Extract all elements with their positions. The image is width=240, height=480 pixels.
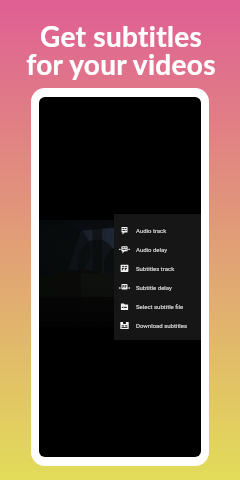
staticText: Get subtitles for your videos [1, 19, 240, 81]
button[interactable]: Select subtitle file [114, 297, 201, 316]
button[interactable]: Audio track [114, 221, 201, 240]
staticText: Audio delay [136, 246, 168, 253]
staticText: Download subtitles [136, 322, 188, 329]
staticText: Select subtitle file [136, 303, 184, 310]
button[interactable]: Audio delay [114, 240, 201, 259]
staticText: Audio track [136, 227, 167, 234]
button[interactable]: Download subtitles [114, 316, 201, 335]
staticText: Subtitles track [136, 265, 175, 272]
button[interactable]: Subtitles track [114, 259, 201, 278]
button[interactable]: Subtitle delay [114, 278, 201, 297]
staticText: Subtitle delay [136, 284, 172, 291]
